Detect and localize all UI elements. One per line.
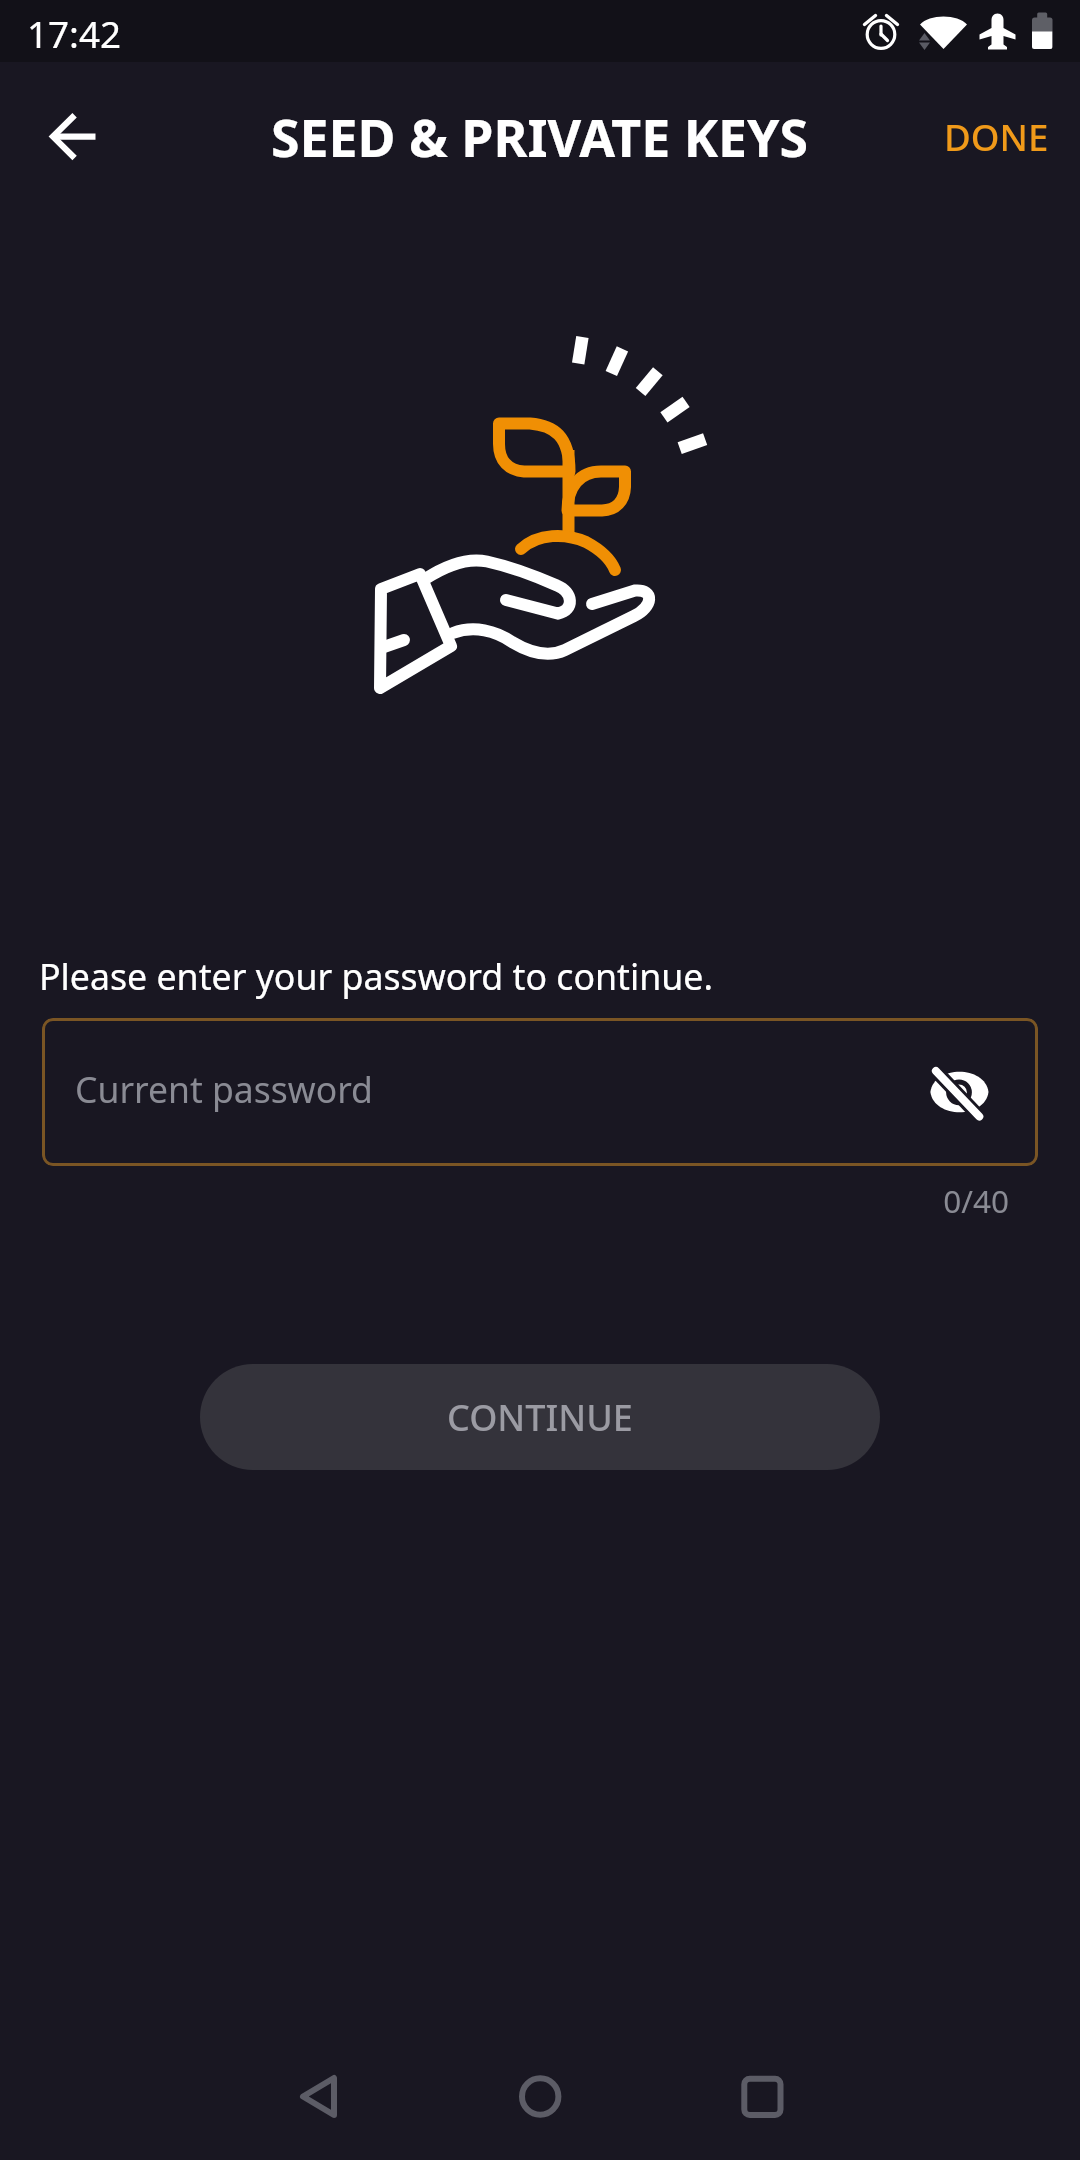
button[interactable]: Recent apps xyxy=(720,2074,804,2158)
staticText: 0/40 xyxy=(0,1179,1009,1222)
button[interactable]: Back xyxy=(26,74,122,170)
button[interactable]: Show password xyxy=(914,1044,1010,1140)
button[interactable]: DONE xyxy=(924,90,1069,184)
staticText: Current password xyxy=(75,1065,373,1113)
button[interactable]: Back xyxy=(258,2074,342,2158)
staticText: CONTINUE xyxy=(447,1393,633,1442)
staticText: DONE xyxy=(944,112,1049,162)
button[interactable]: Home xyxy=(498,2074,582,2158)
staticText: 17:42 xyxy=(27,9,122,59)
button[interactable]: Current password xyxy=(42,1018,1038,1166)
button[interactable]: CONTINUE xyxy=(200,1364,880,1470)
staticText: Please enter your password to continue. xyxy=(39,952,713,1001)
staticText: SEED & PRIVATE KEYS xyxy=(271,102,809,173)
